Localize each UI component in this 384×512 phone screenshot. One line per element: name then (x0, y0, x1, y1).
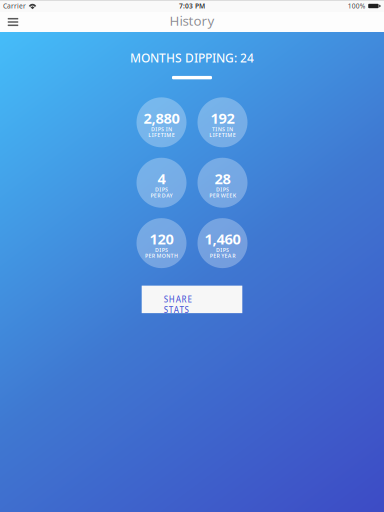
staticText: LIFETIME (148, 131, 175, 138)
staticText: 4 (157, 169, 165, 188)
staticText: 192 (210, 108, 234, 128)
staticText: PER WEEK (209, 192, 236, 199)
staticText: DIPS (216, 186, 229, 193)
staticText: PER MONTH (145, 252, 178, 259)
staticText: LIFETIME (209, 131, 236, 138)
staticText: SHARE STATS (164, 294, 220, 305)
button[interactable]: Menu (3, 12, 23, 32)
staticText: DIPS (216, 246, 229, 253)
staticText: Carrier (3, 2, 26, 10)
staticText: 28 (214, 169, 230, 188)
staticText: 100% (348, 2, 366, 10)
staticText: TINS IN (212, 126, 233, 133)
staticText: DIPS (155, 186, 168, 193)
staticText: 1,460 (204, 229, 240, 249)
staticText: 120 (149, 229, 173, 249)
staticText: PER DAY (150, 192, 173, 199)
staticText: DIPS (155, 246, 168, 253)
staticText: History (169, 12, 214, 29)
staticText: 2,880 (143, 108, 179, 128)
staticText: 7:03 PM (179, 2, 205, 10)
button[interactable]: SHARE STATS (142, 286, 242, 313)
staticText: MONTHS DIPPING: 24 (130, 50, 254, 66)
staticText: PER YEAR (210, 252, 235, 259)
staticText: DIPS IN (151, 126, 172, 133)
